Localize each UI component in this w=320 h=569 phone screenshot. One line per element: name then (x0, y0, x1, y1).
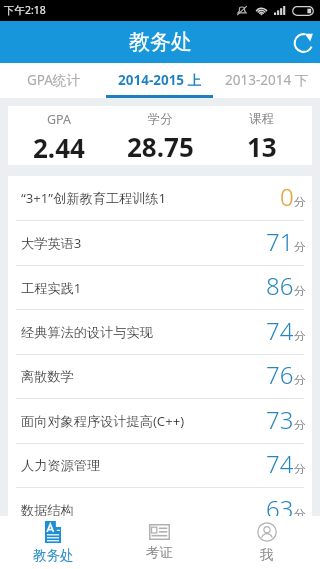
staticText: 分 (294, 240, 306, 254)
button[interactable]: 面向对象程序设计提高(C++) (8, 399, 312, 443)
staticText: “3+1”创新教育工程训练1 (21, 189, 280, 207)
staticText: 28.75 (127, 129, 194, 164)
staticText: 大学英语3 (21, 234, 266, 252)
staticText: 2014-2015 上 (118, 71, 202, 89)
staticText: 考证 (146, 544, 173, 561)
button[interactable]: 我 (213, 516, 320, 569)
button[interactable]: GPA统计 (0, 63, 106, 98)
staticText: 数据结构 (21, 502, 266, 516)
staticText: 学分 (148, 111, 173, 127)
staticText: 2013-2014 下 (225, 71, 309, 89)
button[interactable]: 教务处 (0, 516, 106, 569)
button[interactable]: “3+1”创新教育工程训练1 (8, 176, 312, 220)
staticText: 13 (247, 129, 277, 164)
staticText: GPA统计 (27, 71, 80, 89)
button[interactable]: 离散数学 (8, 355, 312, 398)
staticText: 分 (294, 418, 306, 432)
staticText: 离散数学 (21, 368, 266, 385)
staticText: 分 (294, 284, 306, 298)
button[interactable]: Refresh (287, 26, 319, 58)
staticText: 2.44 (33, 130, 85, 165)
button[interactable]: 大学英语3 (8, 221, 312, 265)
staticText: 73 (266, 403, 294, 436)
staticText: 教务处 (33, 547, 74, 564)
staticText: GPA (47, 111, 72, 128)
staticText: 教务处 (129, 29, 192, 55)
button[interactable]: 2013-2014 下 (213, 63, 320, 98)
staticText: 分 (294, 195, 306, 209)
staticText: 我 (260, 546, 274, 563)
staticText: 经典算法的设计与实现 (21, 324, 266, 341)
staticText: 76 (266, 358, 294, 391)
staticText: 课程 (249, 111, 274, 127)
staticText: 工程实践1 (21, 279, 266, 297)
staticText: 71 (266, 225, 294, 258)
button[interactable]: 工程实践1 (8, 266, 312, 309)
staticText: 分 (294, 462, 306, 476)
staticText: 下午2:18 (4, 3, 46, 17)
button[interactable]: 数据结构 (8, 488, 312, 516)
button[interactable]: 人力资源管理 (8, 444, 312, 487)
staticText: 分 (294, 329, 306, 343)
button[interactable]: 经典算法的设计与实现 (8, 310, 312, 354)
staticText: 74 (266, 314, 294, 347)
staticText: 63 (266, 492, 294, 516)
staticText: 86 (266, 269, 294, 302)
staticText: 74 (266, 447, 294, 480)
button[interactable]: 2014-2015 上 (106, 63, 213, 98)
staticText: 面向对象程序设计提高(C++) (21, 412, 266, 430)
staticText: 分 (294, 373, 306, 387)
staticText: 人力资源管理 (21, 457, 266, 474)
button[interactable]: 考证 (106, 516, 213, 569)
staticText: 0 (280, 180, 294, 213)
staticText: 分 (294, 507, 306, 516)
